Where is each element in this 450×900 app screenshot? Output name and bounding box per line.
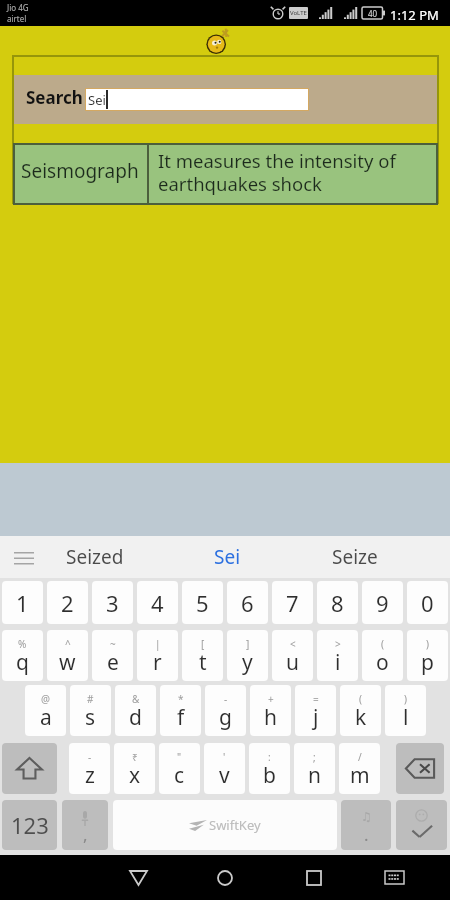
button[interactable]: Home	[203, 855, 247, 900]
button[interactable]: )	[385, 685, 426, 736]
button[interactable]: (	[362, 630, 403, 681]
staticText: airtel	[7, 13, 27, 24]
staticText: .	[364, 823, 369, 846]
button[interactable]: <	[272, 630, 313, 681]
staticText: ^	[65, 637, 71, 651]
button[interactable]: Seize	[305, 536, 405, 578]
staticText: d	[129, 703, 142, 732]
button[interactable]: 9	[362, 581, 403, 624]
button[interactable]: /	[339, 743, 380, 794]
button[interactable]: =	[295, 685, 336, 736]
button[interactable]: Recent apps	[292, 855, 336, 900]
button[interactable]: ^	[47, 630, 88, 681]
button[interactable]: -	[69, 743, 110, 794]
staticText: (	[381, 637, 384, 651]
button[interactable]: >	[317, 630, 358, 681]
button[interactable]: #	[70, 685, 111, 736]
button[interactable]: 5	[182, 581, 223, 624]
button[interactable]: Hide keyboard	[372, 855, 416, 900]
staticText: ~	[110, 637, 116, 651]
button[interactable]: )	[407, 630, 448, 681]
staticText: z	[85, 761, 95, 790]
button[interactable]: Enter	[396, 800, 447, 850]
staticText: &	[132, 692, 140, 706]
staticText: ,	[83, 823, 88, 846]
staticText: f	[177, 703, 185, 732]
staticText: Sei	[88, 91, 106, 109]
button[interactable]: 2	[47, 581, 88, 624]
staticText: i	[335, 648, 341, 677]
staticText: 0	[421, 588, 434, 618]
staticText: 8	[331, 588, 344, 618]
staticText: @	[41, 692, 50, 706]
button[interactable]: It measures the intensity of earthquakes…	[149, 143, 438, 205]
staticText: y	[242, 648, 253, 677]
button[interactable]: Seismograph	[13, 143, 147, 205]
button[interactable]: 6	[227, 581, 268, 624]
staticText: 3	[106, 588, 119, 618]
staticText: 1:12 PM	[390, 6, 439, 24]
staticText: q	[16, 648, 29, 677]
button[interactable]: Sei	[177, 536, 277, 578]
button[interactable]: (	[340, 685, 381, 736]
button[interactable]: '	[204, 743, 245, 794]
button[interactable]: :	[249, 743, 290, 794]
staticText: h	[264, 703, 277, 732]
button[interactable]: %	[2, 630, 43, 681]
button[interactable]: "	[159, 743, 200, 794]
staticText: <	[290, 637, 296, 651]
button[interactable]: ;	[294, 743, 335, 794]
staticText: m	[350, 761, 370, 790]
button[interactable]: Seized	[45, 536, 145, 578]
staticText: ♫	[361, 810, 372, 824]
button[interactable]: @	[25, 685, 66, 736]
button[interactable]: ~	[92, 630, 133, 681]
staticText: 9	[376, 588, 389, 618]
button[interactable]: *	[160, 685, 201, 736]
button[interactable]: Sei	[86, 89, 308, 110]
button[interactable]: Backspace	[396, 743, 444, 794]
staticText: r	[153, 648, 162, 677]
button[interactable]: Space	[113, 800, 337, 850]
button[interactable]: 1	[2, 581, 43, 624]
button[interactable]: &	[115, 685, 156, 736]
button[interactable]: +	[250, 685, 291, 736]
button[interactable]: Numbers	[2, 800, 57, 850]
button[interactable]: 3	[92, 581, 133, 624]
staticText: e	[107, 648, 119, 677]
button[interactable]: Period	[341, 800, 391, 850]
button[interactable]: 0	[407, 581, 448, 624]
staticText: >	[335, 637, 341, 651]
staticText: /	[358, 750, 362, 764]
button[interactable]: ₹	[114, 743, 155, 794]
button[interactable]: Back	[116, 855, 160, 900]
button[interactable]: 8	[317, 581, 358, 624]
button[interactable]: |	[137, 630, 178, 681]
staticText: s	[85, 703, 96, 732]
button[interactable]: Keyboard menu	[2, 536, 46, 578]
staticText: 1	[16, 588, 29, 618]
staticText: *	[178, 692, 184, 706]
staticText: g	[219, 703, 232, 732]
button[interactable]: -	[205, 685, 246, 736]
staticText: u	[286, 648, 299, 677]
staticText: [	[201, 637, 205, 651]
staticText: %	[18, 637, 27, 651]
button[interactable]: [	[182, 630, 223, 681]
button[interactable]: Voice input	[62, 800, 108, 850]
staticText: 5	[196, 588, 209, 618]
staticText: o	[376, 648, 389, 677]
staticText: x	[129, 761, 141, 790]
button[interactable]: ]	[227, 630, 268, 681]
staticText: #	[87, 692, 94, 706]
button[interactable]: 4	[137, 581, 178, 624]
staticText: 123	[11, 810, 49, 840]
button[interactable]: Shift	[2, 743, 57, 794]
staticText: Seismograph	[21, 158, 139, 184]
staticText: "	[177, 750, 182, 764]
button[interactable]: 7	[272, 581, 313, 624]
staticText: -	[224, 692, 228, 706]
staticText: (	[359, 692, 362, 706]
staticText: Seize	[332, 544, 378, 570]
staticText: 6	[241, 588, 254, 618]
